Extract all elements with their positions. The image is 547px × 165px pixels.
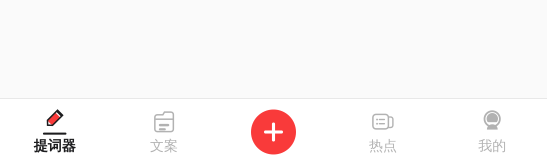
staticText: 我的 bbox=[478, 137, 506, 155]
button[interactable]: 热点 bbox=[328, 99, 438, 165]
button[interactable]: 提词器 bbox=[0, 99, 109, 165]
button[interactable]: 文案 bbox=[109, 99, 219, 165]
staticText: 热点 bbox=[369, 137, 397, 155]
button[interactable]: 新建 bbox=[219, 99, 328, 165]
staticText: 文案 bbox=[150, 137, 178, 155]
button[interactable]: 我的 bbox=[438, 99, 547, 165]
staticText: 提词器 bbox=[34, 137, 76, 155]
